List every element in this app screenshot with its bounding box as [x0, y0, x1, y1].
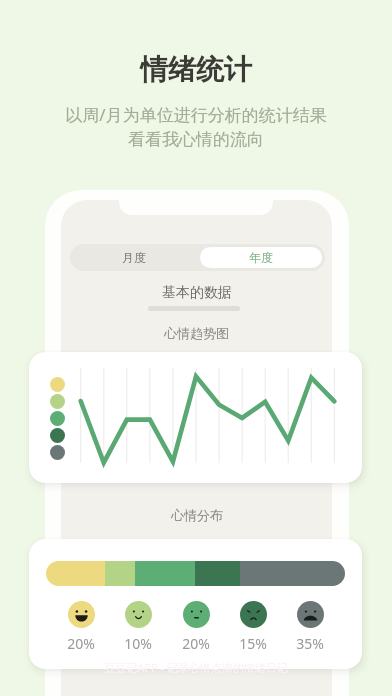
staticText: 情绪统计 [140, 52, 252, 87]
other: Neutral [183, 601, 210, 628]
staticText: 10% [124, 634, 152, 653]
other: Very sad [297, 601, 324, 628]
button[interactable]: Very happy [55, 601, 107, 653]
button[interactable]: Very sad [284, 601, 336, 653]
staticText: 看看我心情的流向 [128, 129, 264, 150]
staticText: 心情趋势图 [164, 325, 229, 341]
other: Very happy [68, 601, 95, 628]
staticText: 基本的数据 [162, 284, 232, 302]
staticText: 以周/月为单位进行分析的统计结果 [65, 103, 327, 126]
staticText: 20% [67, 634, 95, 653]
button[interactable]: Happy [112, 601, 164, 653]
button[interactable]: Neutral [170, 601, 222, 653]
staticText: 月度 [122, 250, 146, 265]
staticText: 15% [239, 634, 267, 653]
other: Sad [240, 601, 267, 628]
staticText: 豆豆记APP - 记录心情点滴的情绪日记 [104, 660, 288, 675]
staticText: 年度 [249, 250, 273, 265]
other: Happy [125, 601, 152, 628]
staticText: 心情分布 [171, 507, 223, 523]
button[interactable]: 年度 [200, 247, 322, 268]
staticText: 20% [182, 634, 210, 653]
button[interactable]: Sad [227, 601, 279, 653]
button[interactable]: 月度 [70, 244, 197, 271]
staticText: 35% [296, 634, 324, 653]
